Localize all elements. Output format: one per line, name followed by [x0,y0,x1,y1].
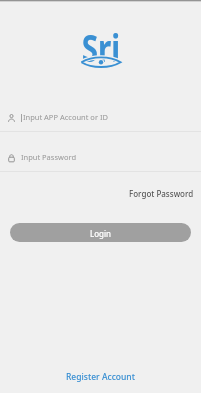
button[interactable]: Register Account [60,367,141,387]
button[interactable]: Password [0,132,201,171]
staticText: Input APP Account or ID [23,112,108,122]
other: Password [8,154,15,162]
staticText: Register Account [66,371,135,383]
button[interactable]: Account [0,92,201,131]
staticText: Login [90,228,111,239]
staticText: Forgot Password [129,188,194,199]
other: Account [8,114,15,122]
staticText: Sri [82,22,120,70]
button[interactable]: Forgot Password [126,184,197,203]
button[interactable]: Login [10,223,191,242]
staticText: Input Password [21,152,77,162]
